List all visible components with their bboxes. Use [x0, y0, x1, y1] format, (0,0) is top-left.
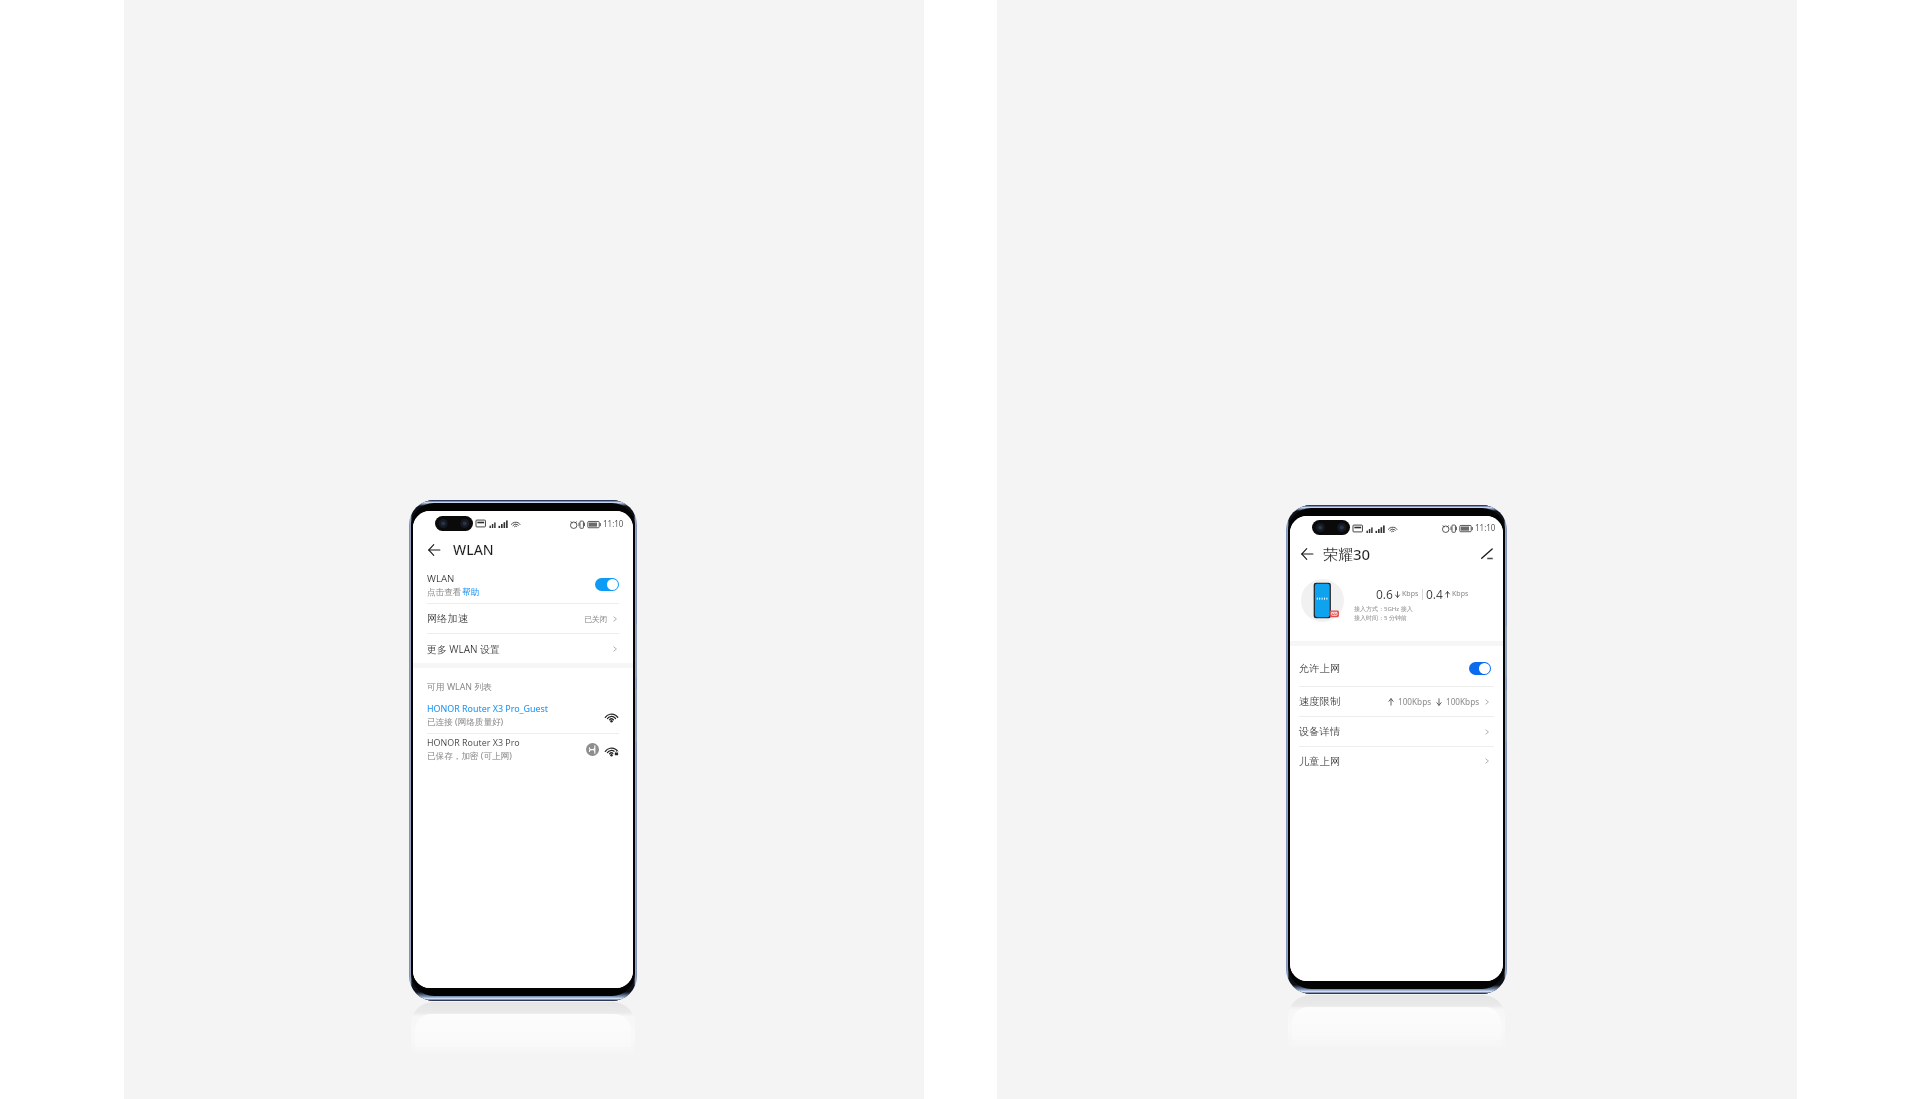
button[interactable]: Back — [1297, 544, 1317, 564]
button[interactable]: 更多 WLAN 设置 — [413, 634, 633, 663]
staticText: 可用 WLAN 列表 — [427, 681, 492, 693]
staticText: 11:10 — [603, 518, 624, 529]
button[interactable]: Toggle switch, on — [1469, 662, 1491, 675]
staticText: 允许上网 — [1299, 662, 1341, 675]
button[interactable]: Back — [424, 540, 444, 560]
staticText: 荣耀30 — [1323, 544, 1371, 564]
button[interactable]: HONOR Router X3 Pro_Guest — [413, 700, 633, 733]
staticText: WLAN — [453, 540, 494, 559]
staticText: 接入时间：5 分钟前 — [1354, 614, 1407, 622]
staticText: 儿童上网 — [1299, 755, 1341, 768]
staticText: HONOR Router X3 Pro_Guest — [427, 702, 548, 714]
button[interactable]: WLAN — [413, 562, 633, 603]
staticText: WLAN — [427, 572, 455, 585]
staticText: 已关闭 — [584, 614, 608, 624]
staticText: 0.6 — [1376, 586, 1393, 602]
staticText: 0.4 — [1426, 586, 1443, 602]
button[interactable]: 设备详情 — [1290, 717, 1503, 746]
staticText: Kbps — [1402, 589, 1419, 599]
staticText: 帮助 — [462, 587, 480, 598]
staticText: 已连接 (网络质量好) — [427, 716, 504, 728]
staticText: 网络加速 — [427, 612, 469, 625]
button[interactable]: 速度限制 — [1290, 687, 1503, 716]
staticText: 已保存，加密 (可上网) — [427, 750, 512, 762]
button[interactable]: Rename device — [1477, 544, 1497, 564]
staticText: 100Kbps — [1398, 696, 1432, 707]
staticText: 速度限制 — [1299, 695, 1341, 708]
button[interactable]: 允许上网 — [1290, 646, 1503, 686]
button[interactable]: 网络加速 — [413, 604, 633, 633]
button[interactable]: HONOR Router X3 Pro — [413, 734, 633, 767]
button[interactable]: Toggle switch, on — [595, 578, 619, 591]
staticText: 设备详情 — [1299, 725, 1341, 738]
staticText: HONOR Router X3 Pro — [427, 736, 520, 748]
button[interactable]: 儿童上网 — [1290, 747, 1503, 775]
staticText: 更多 WLAN 设置 — [427, 642, 500, 656]
staticText: Kbps — [1452, 589, 1469, 599]
staticText: 100Kbps — [1446, 696, 1480, 707]
staticText: 点击查看 — [427, 587, 462, 598]
staticText: 11:10 — [1475, 522, 1496, 533]
staticText: 接入方式：5GHz 接入 — [1354, 605, 1413, 613]
